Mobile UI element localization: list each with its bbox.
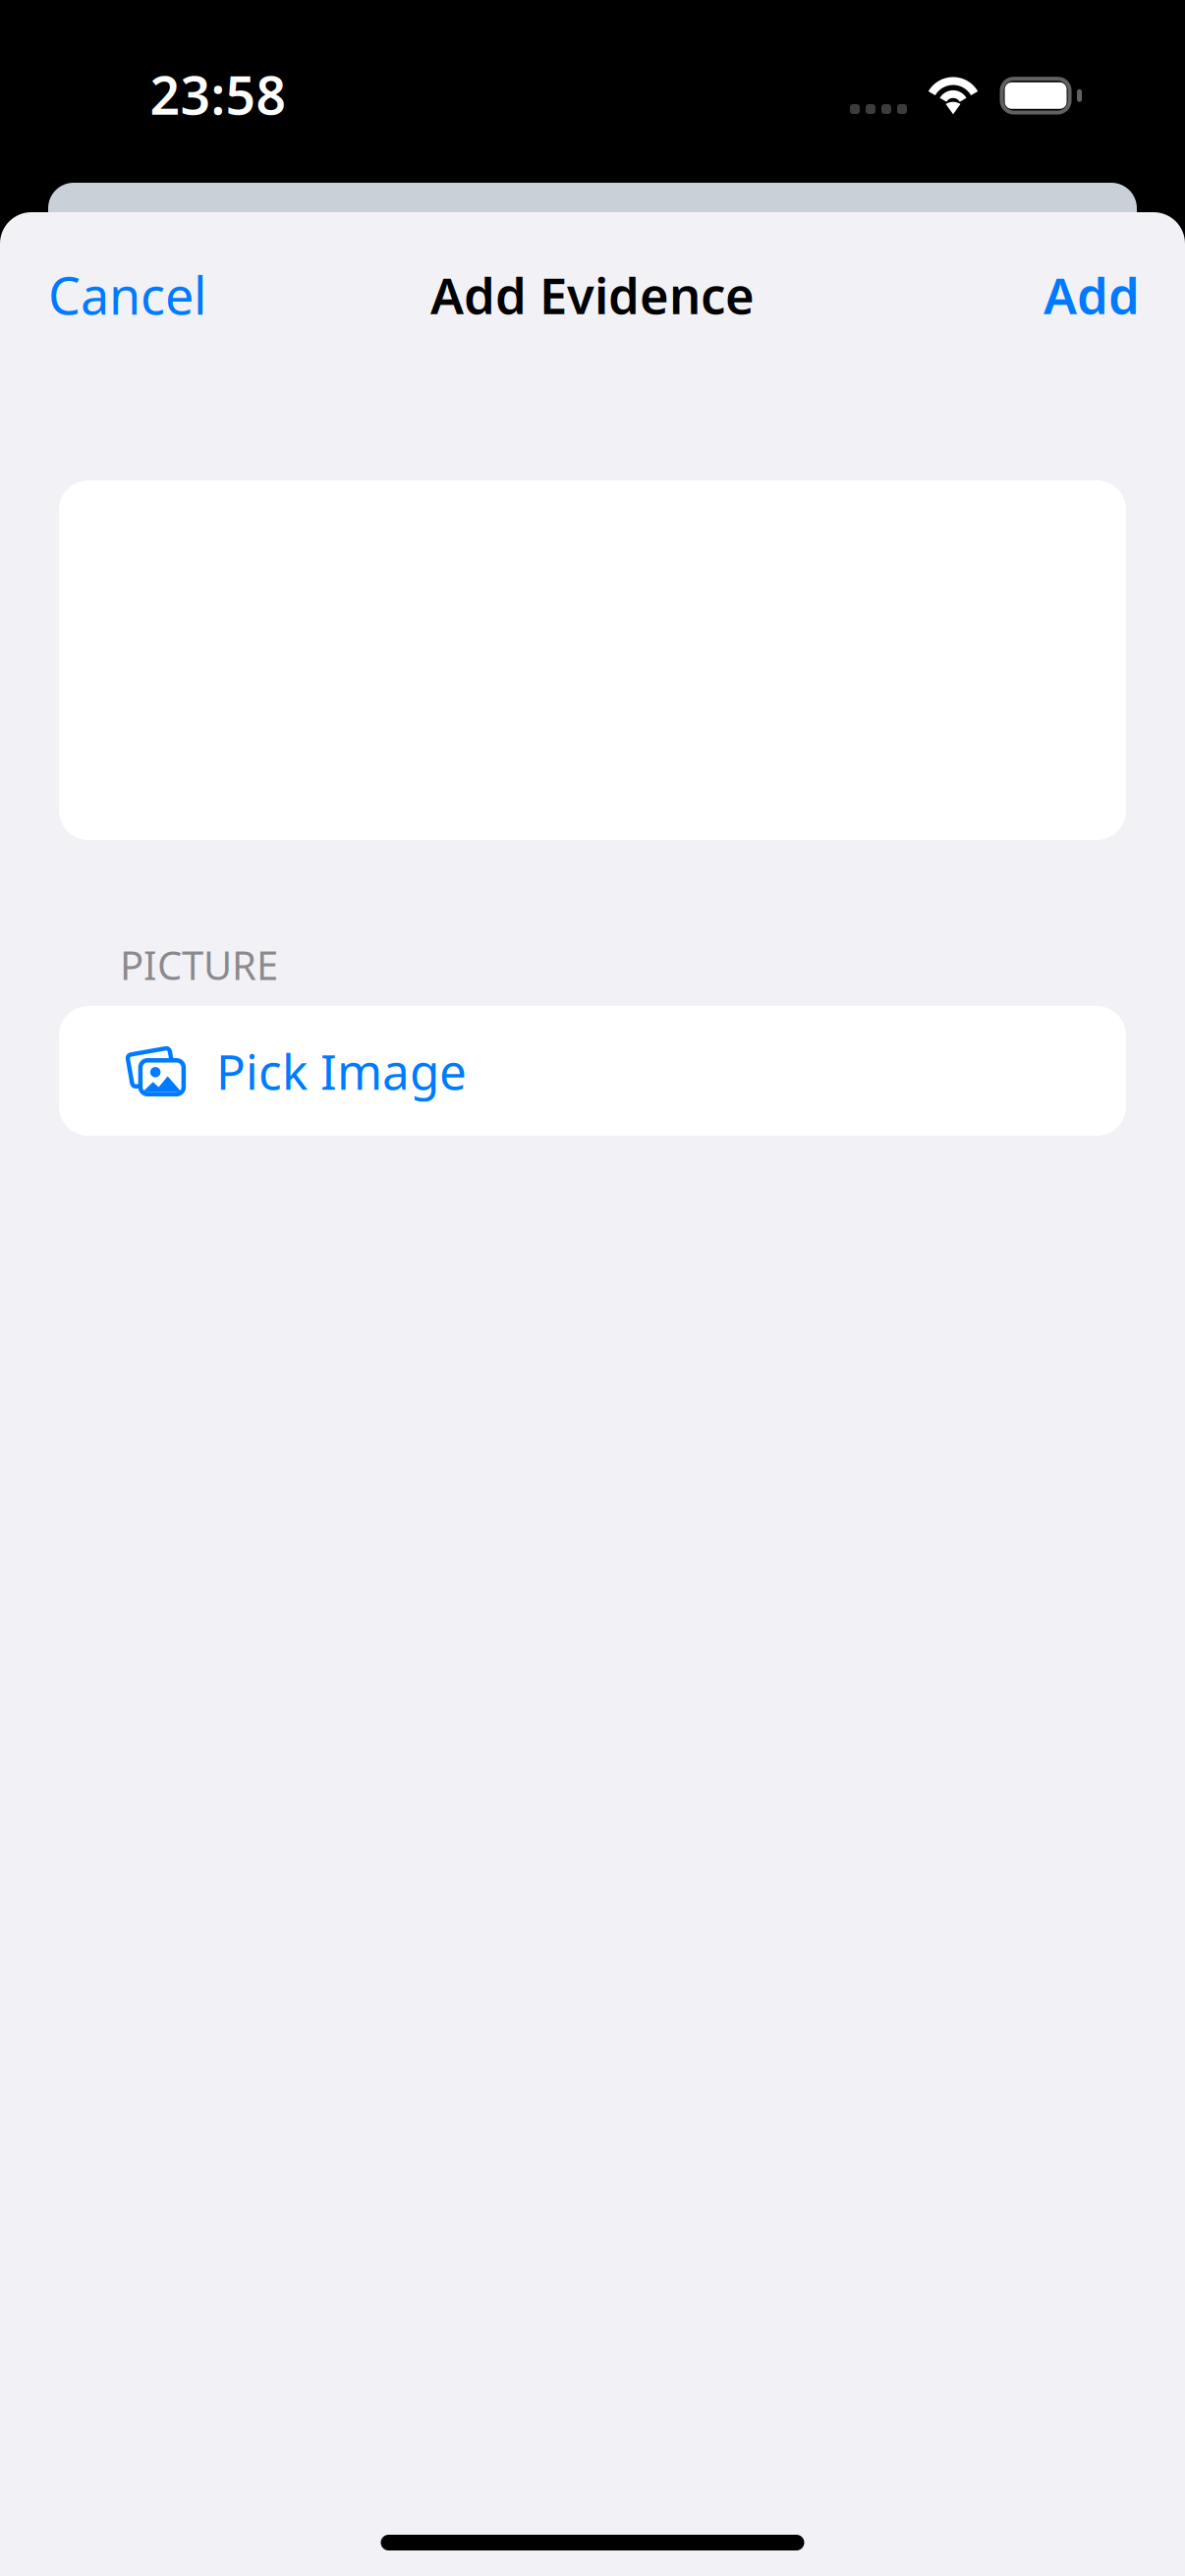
staticText: Cancel — [48, 261, 206, 329]
staticText: Pick Image — [216, 1039, 467, 1103]
staticText: Add Evidence — [430, 262, 755, 328]
button[interactable]: Pick Image — [59, 1006, 1126, 1136]
staticText: 23:58 — [150, 60, 286, 129]
button[interactable]: Cancel — [48, 236, 274, 354]
button[interactable]: Add — [963, 236, 1140, 354]
staticText: Add — [1044, 262, 1140, 328]
staticText: PICTURE — [120, 939, 278, 991]
